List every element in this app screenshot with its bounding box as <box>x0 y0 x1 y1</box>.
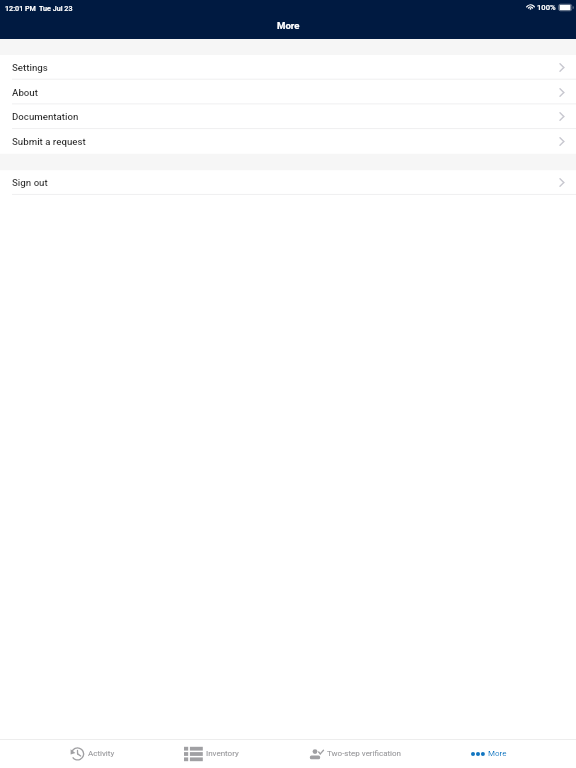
staticText: Sign out <box>12 177 48 188</box>
other: Open <box>559 178 565 187</box>
staticText: Inventory <box>206 749 239 758</box>
staticText: Activity <box>88 749 115 758</box>
button[interactable]: Settings <box>0 55 576 80</box>
other: Open <box>559 63 565 72</box>
button[interactable]: Two-step verification <box>309 739 402 768</box>
staticText: 12:01 PM <box>5 4 36 12</box>
staticText: Tue Jul 23 <box>39 4 73 12</box>
staticText: 100% <box>537 3 556 12</box>
button[interactable]: Submit a request <box>0 129 576 154</box>
staticText: Settings <box>12 62 48 73</box>
staticText: About <box>12 87 38 98</box>
staticText: Documentation <box>12 111 79 122</box>
button[interactable]: Activity <box>69 739 115 768</box>
staticText: More <box>488 749 507 758</box>
other: Open <box>559 88 565 97</box>
staticText: Two-step verification <box>327 749 402 758</box>
other: Open <box>559 137 565 146</box>
button[interactable]: Inventory <box>184 739 239 768</box>
staticText: Submit a request <box>12 136 86 147</box>
staticText: More <box>277 20 300 31</box>
button[interactable]: Documentation <box>0 104 576 129</box>
other: Open <box>559 112 565 121</box>
button[interactable]: Sign out <box>0 170 576 195</box>
button[interactable]: About <box>0 80 576 105</box>
button[interactable]: More <box>471 739 507 768</box>
